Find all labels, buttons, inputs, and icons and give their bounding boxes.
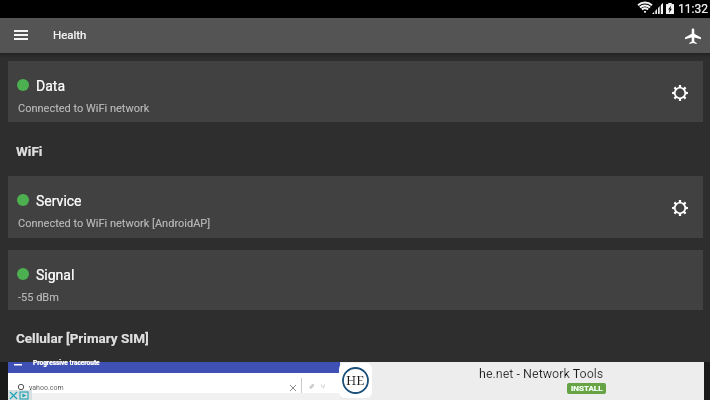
button[interactable]: Signal <box>8 250 703 310</box>
staticText: HE <box>346 371 365 389</box>
staticText: Service <box>36 193 82 209</box>
staticText: Health <box>53 28 87 41</box>
staticText: ⑂ <box>321 383 326 390</box>
button[interactable]: INSTALL <box>567 383 606 394</box>
staticText: he.net - Network Tools <box>479 366 604 381</box>
button[interactable]: Settings <box>666 79 694 107</box>
staticText: -55 dBm <box>18 291 59 304</box>
staticText: Signal <box>36 267 75 283</box>
button[interactable]: Open navigation drawer <box>7 21 34 48</box>
button[interactable]: Settings <box>666 194 694 222</box>
staticText: Data <box>36 78 65 94</box>
button[interactable]: Airplane mode <box>679 22 707 50</box>
button[interactable]: Data <box>8 61 703 122</box>
button[interactable]: Close ad <box>8 390 32 400</box>
staticText: Connected to WiFi network <box>18 102 150 115</box>
staticText: Progressive traceroute <box>33 359 100 367</box>
staticText: ✐ <box>309 383 315 391</box>
staticText: Cellular [Primary SIM] <box>16 330 149 346</box>
staticText: yahoo.com <box>29 384 64 392</box>
button[interactable]: Service <box>8 176 703 238</box>
staticText: WiFi <box>16 143 43 159</box>
staticText: 11:32 <box>678 2 708 16</box>
staticText: Connected to WiFi network [AndroidAP] <box>18 217 211 230</box>
staticText: INSTALL <box>571 384 603 393</box>
